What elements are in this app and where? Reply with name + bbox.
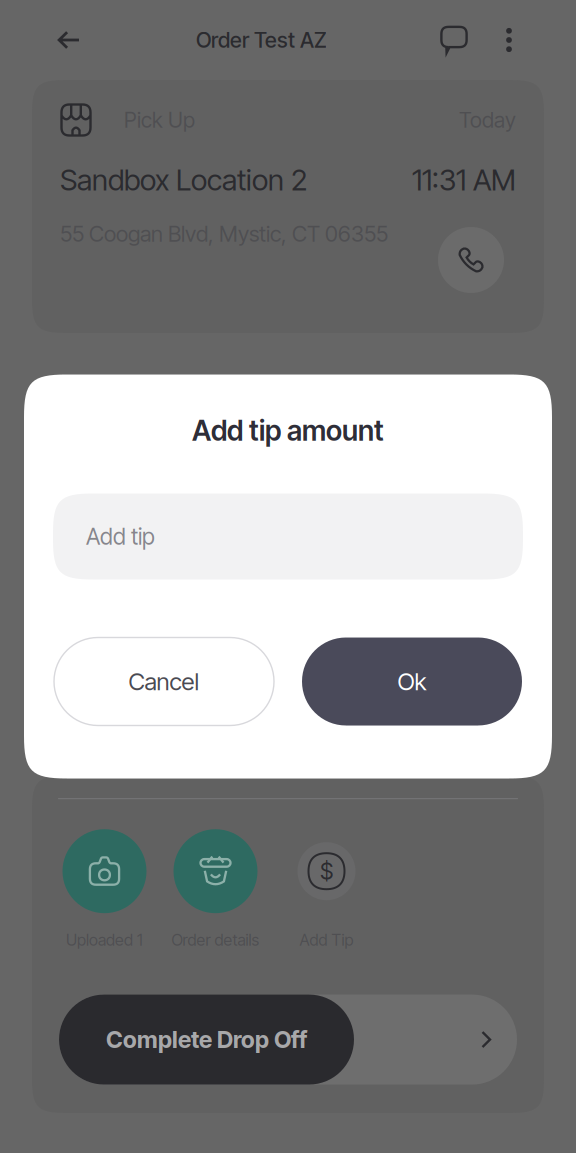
staticText: Today — [459, 107, 516, 133]
button[interactable]: Uploaded photos — [62, 829, 146, 913]
staticText: 11:31 AM — [412, 162, 516, 197]
staticText: Order Test AZ — [196, 27, 327, 53]
staticText: Sandbox Location 2 — [60, 162, 307, 197]
button[interactable]: Ok — [302, 637, 522, 725]
button[interactable]: More options — [496, 18, 522, 62]
button[interactable]: Back — [47, 18, 91, 62]
staticText: Ok — [397, 667, 426, 696]
button[interactable]: Add tip — [284, 829, 368, 913]
staticText: Add tip — [86, 523, 155, 550]
staticText: Complete Drop Off — [106, 1025, 307, 1054]
button[interactable]: Complete Drop Off — [59, 995, 517, 1085]
staticText: Add tip amount — [192, 414, 384, 447]
staticText: Order details — [171, 930, 259, 950]
button[interactable]: Call — [438, 227, 504, 293]
staticText: Add Tip — [299, 930, 353, 950]
staticText: 55 Coogan Blvd, Mystic, CT 06355 — [60, 220, 388, 247]
staticText: Uploaded 1 — [66, 930, 143, 950]
staticText: Cancel — [128, 667, 199, 696]
button[interactable]: Messages — [432, 18, 476, 62]
staticText: $ — [320, 857, 333, 885]
staticText: Pick Up — [124, 107, 195, 133]
button[interactable]: Cancel — [54, 637, 274, 725]
button[interactable]: Order details — [173, 829, 257, 913]
